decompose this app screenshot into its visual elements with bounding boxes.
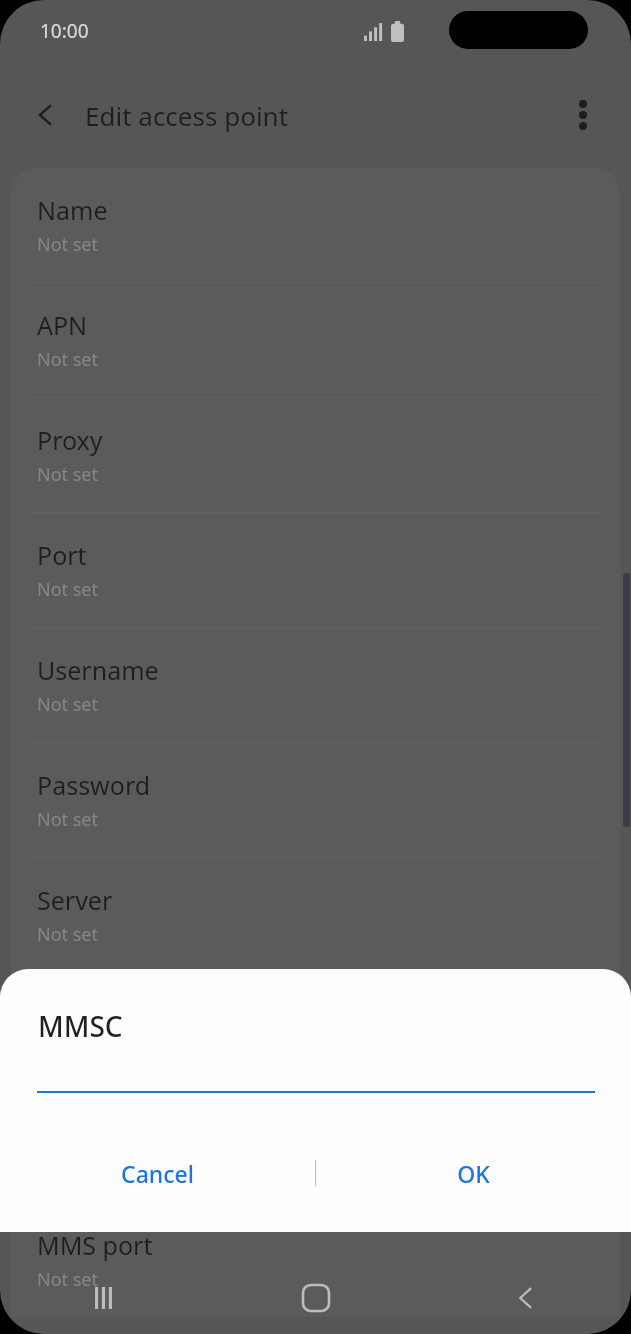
staticText: Proxy bbox=[37, 423, 103, 457]
staticText: APN bbox=[37, 308, 88, 342]
button[interactable]: Cancel bbox=[0, 1141, 315, 1205]
staticText: Edit access point bbox=[85, 98, 289, 133]
staticText: MMSC bbox=[37, 998, 112, 1032]
staticText: Not set bbox=[37, 577, 99, 602]
staticText: Cancel bbox=[121, 1158, 194, 1189]
button[interactable]: Proxy bbox=[11, 398, 620, 512]
button[interactable]: MMSC bbox=[11, 973, 620, 1087]
staticText: Server bbox=[37, 883, 113, 917]
staticText: Name bbox=[37, 193, 108, 227]
button[interactable]: More options bbox=[557, 89, 609, 141]
button[interactable]: Back bbox=[20, 89, 72, 141]
button[interactable]: Server bbox=[11, 858, 620, 972]
button[interactable]: Name bbox=[11, 168, 620, 282]
staticText: MMS port bbox=[37, 1228, 153, 1262]
button[interactable]: OK bbox=[316, 1141, 631, 1205]
staticText: Port bbox=[37, 538, 87, 572]
button[interactable]: APN bbox=[11, 283, 620, 397]
staticText: Not set bbox=[37, 692, 99, 717]
button[interactable]: MMS proxy bbox=[11, 1088, 620, 1202]
staticText: Not set bbox=[37, 347, 99, 372]
button[interactable]: Recent apps bbox=[0, 1262, 211, 1334]
staticText: Not set bbox=[37, 807, 99, 832]
staticText: Username bbox=[37, 653, 159, 687]
staticText: Not set bbox=[37, 922, 99, 947]
staticText: Not set bbox=[37, 1267, 99, 1292]
staticText: Password bbox=[37, 768, 151, 802]
button[interactable]: Username bbox=[11, 628, 620, 742]
staticText: Not set bbox=[37, 462, 99, 487]
staticText: 10:00 bbox=[40, 18, 89, 44]
staticText: MMSC bbox=[38, 1007, 123, 1045]
button[interactable]: MMS port bbox=[11, 1203, 620, 1317]
staticText: Not set bbox=[37, 232, 99, 257]
button[interactable]: Port bbox=[11, 513, 620, 627]
staticText: OK bbox=[457, 1158, 490, 1189]
button[interactable]: Password bbox=[11, 743, 620, 857]
button[interactable]: Back bbox=[421, 1262, 631, 1334]
button[interactable]: Home bbox=[211, 1262, 421, 1334]
